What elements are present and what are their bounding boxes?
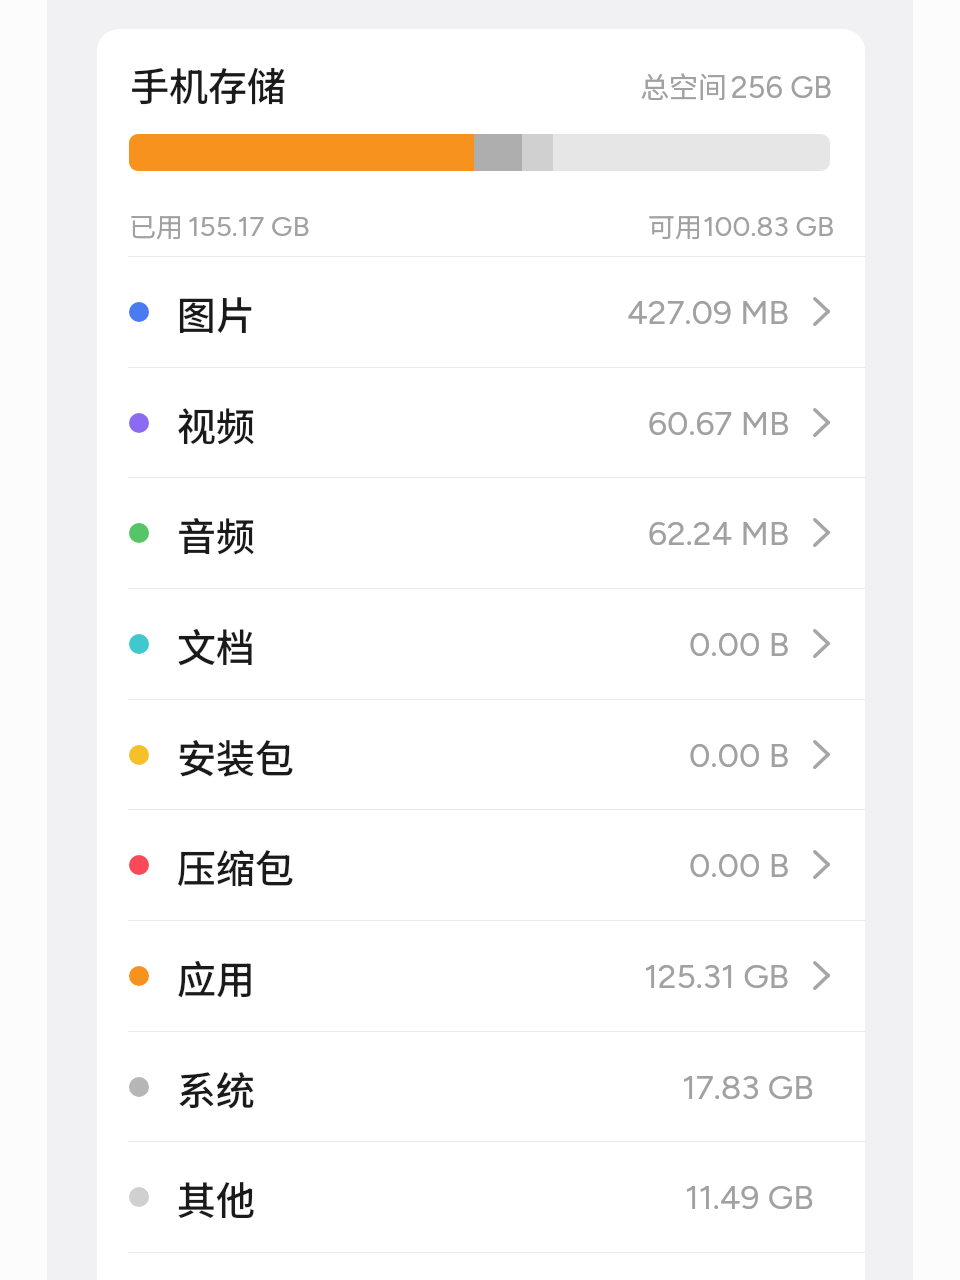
button[interactable]: 音频 xyxy=(97,477,865,588)
staticText: 0.00 B xyxy=(689,624,790,664)
button[interactable]: 文档 xyxy=(97,588,865,699)
staticText: 总空间 xyxy=(640,64,728,106)
other: 查看安装包详情 xyxy=(813,740,833,769)
button[interactable]: 压缩包 xyxy=(97,809,865,920)
other: 查看音频详情 xyxy=(813,518,833,547)
other: 查看文档详情 xyxy=(813,629,833,658)
staticText: 62.24 MB xyxy=(648,513,790,553)
button[interactable]: 系统 xyxy=(97,1031,865,1142)
staticText: 256 GB xyxy=(397,69,832,106)
staticText: 427.09 MB xyxy=(627,292,790,332)
button[interactable]: 应用 xyxy=(97,920,865,1031)
staticText: 视频 xyxy=(177,396,256,452)
button[interactable]: 视频 xyxy=(97,367,865,478)
staticText: 0.00 B xyxy=(689,845,790,885)
staticText: 125.31 GB xyxy=(644,956,790,996)
staticText: 11.49 GB xyxy=(685,1177,814,1217)
other: 查看应用详情 xyxy=(813,961,833,990)
staticText: 音频 xyxy=(177,506,256,562)
staticText: 文档 xyxy=(177,617,256,673)
button[interactable]: 图片 xyxy=(97,256,865,367)
staticText: 100.83 GB xyxy=(397,209,834,243)
staticText: 应用 xyxy=(177,949,256,1005)
staticText: 17.83 GB xyxy=(682,1067,814,1107)
staticText: 其他 xyxy=(177,1170,256,1226)
other: 查看图片详情 xyxy=(813,297,833,326)
staticText: 155.17 GB xyxy=(188,209,310,243)
staticText: 压缩包 xyxy=(177,838,295,894)
staticText: 手机存储 xyxy=(130,56,287,112)
staticText: 可用 xyxy=(648,206,702,245)
button[interactable]: 其他 xyxy=(97,1141,865,1252)
button[interactable]: 安装包 xyxy=(97,699,865,810)
other: 查看视频详情 xyxy=(813,408,833,437)
staticText: 已用 xyxy=(129,206,183,245)
staticText: 安装包 xyxy=(177,728,295,784)
other: 查看压缩包详情 xyxy=(813,850,833,879)
staticText: 60.67 MB xyxy=(648,403,790,443)
staticText: 0.00 B xyxy=(689,735,790,775)
staticText: 图片 xyxy=(177,285,256,341)
staticText: 系统 xyxy=(177,1060,256,1116)
